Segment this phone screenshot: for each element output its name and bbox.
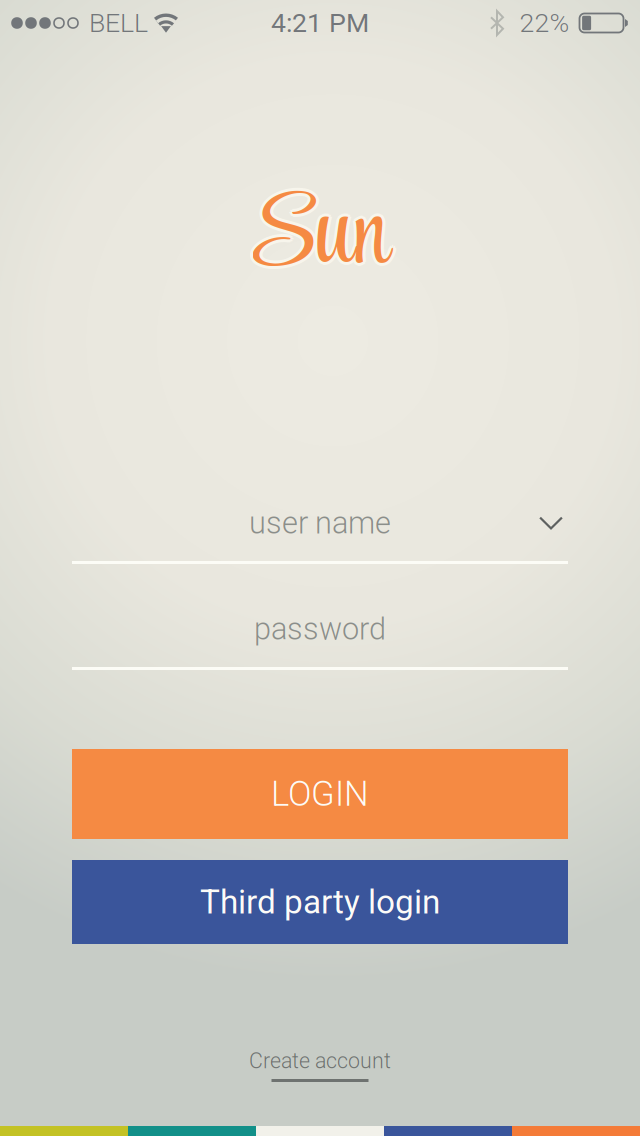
staticText: BELL (89, 7, 148, 39)
staticText: Third party login (200, 882, 440, 922)
staticText: Sun (253, 158, 392, 316)
staticText: Sun (253, 156, 392, 314)
staticText: Sun (250, 155, 389, 313)
staticText: Sun (250, 161, 389, 319)
button[interactable]: Create account (249, 1050, 391, 1082)
button[interactable]: Third party login (72, 860, 568, 944)
staticText: Sun (253, 160, 392, 318)
staticText: user name (249, 505, 391, 541)
button[interactable]: LOGIN (72, 749, 568, 839)
staticText: 22% (519, 7, 569, 39)
staticText: 4:21 PM (271, 7, 369, 39)
staticText: LOGIN (271, 774, 369, 814)
staticText: Create account (249, 1048, 391, 1073)
staticText: Sun (248, 156, 387, 314)
staticText: Sun (247, 158, 386, 316)
staticText: Sun (248, 160, 387, 318)
staticText: password (254, 611, 386, 647)
staticText: Sun (250, 158, 389, 316)
